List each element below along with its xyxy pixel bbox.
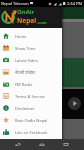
- staticText: Terms & Service: [15, 94, 45, 99]
- button[interactable]: Recent apps: [60, 139, 72, 150]
- staticText: Rate OnAir Nepal: [15, 118, 48, 123]
- staticText: Nepal Telecom: [1, 1, 29, 6]
- button[interactable]: Terms & Service: [0, 90, 62, 102]
- staticText: Home: [15, 34, 27, 39]
- button[interactable]: नेपाली पत्रिका: [0, 66, 62, 78]
- staticText: 2:34 PM: [67, 1, 83, 6]
- button[interactable]: Home: [0, 30, 62, 42]
- staticText: Show Time: [15, 46, 36, 51]
- staticText: Like on Facebook: [15, 130, 48, 135]
- staticText: .com: [37, 20, 47, 25]
- staticText: नेपाली पत्रिका: [15, 70, 35, 75]
- button[interactable]: Home: [36, 139, 48, 150]
- button[interactable]: Disclaimer: [0, 102, 62, 114]
- button[interactable]: Back: [12, 139, 24, 150]
- button[interactable]: FM Radio: [0, 78, 62, 90]
- button[interactable]: Show Time: [0, 42, 62, 54]
- staticText: OnAir: [17, 8, 35, 16]
- button[interactable]: Play: [68, 97, 81, 110]
- staticText: Disclaimer: [15, 106, 35, 111]
- button[interactable]: Rate OnAir Nepal: [0, 114, 62, 126]
- button[interactable]: Latest Video: [0, 54, 62, 66]
- staticText: Latest Video: [15, 58, 39, 63]
- staticText: Nepal: [17, 16, 37, 25]
- staticText: Latest Video: [2, 81, 23, 86]
- button[interactable]: Like on Facebook: [0, 126, 62, 138]
- staticText: OnAir Nepal: [2, 10, 31, 17]
- staticText: FM Radio: [15, 82, 33, 87]
- staticText: 2074: [2, 19, 9, 22]
